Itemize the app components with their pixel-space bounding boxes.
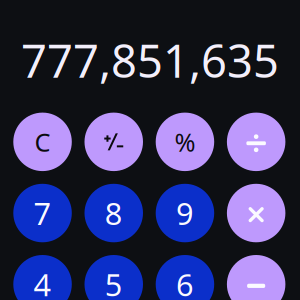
staticText: 6	[176, 264, 194, 300]
button[interactable]: Divide	[227, 113, 285, 171]
button[interactable]: 8	[84, 184, 143, 242]
button[interactable]: 6	[156, 255, 214, 300]
button[interactable]: Subtract	[227, 255, 285, 300]
button[interactable]: 7	[13, 184, 72, 242]
staticText: %	[174, 125, 195, 159]
staticText: 8	[105, 193, 123, 233]
button[interactable]: Plus minus	[84, 113, 143, 171]
button[interactable]: 4	[13, 255, 72, 300]
staticText: 9	[176, 193, 194, 233]
staticText: C	[34, 125, 50, 159]
staticText: 7	[33, 193, 51, 233]
staticText: 4	[33, 264, 51, 300]
button[interactable]: Percent	[156, 113, 214, 171]
button[interactable]: Clear	[13, 113, 72, 171]
button[interactable]: Multiply	[227, 184, 285, 242]
button[interactable]: 9	[156, 184, 214, 242]
button[interactable]: 5	[84, 255, 143, 300]
staticText: 777,851,635	[21, 30, 279, 90]
staticText: 5	[105, 264, 123, 300]
